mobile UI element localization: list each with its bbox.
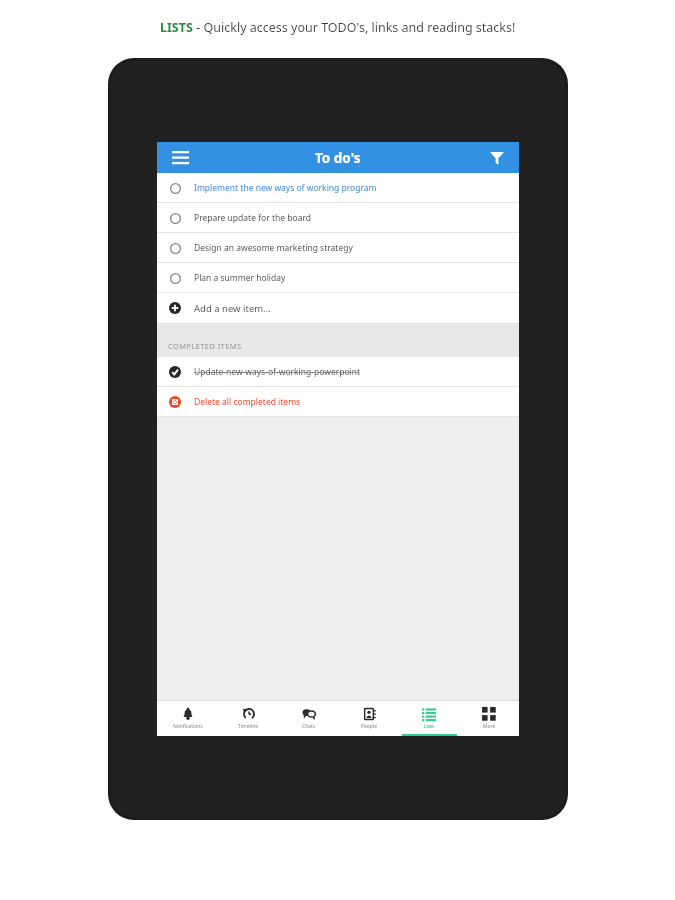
staticText: Lists — [424, 723, 435, 730]
button[interactable]: Implement the new ways of working progra… — [157, 173, 519, 203]
button[interactable]: Design an awesome marketing strategy — [157, 233, 519, 263]
button[interactable]: Update-new-ways-of-working-powerpoint — [157, 357, 519, 387]
staticText: Timeline — [238, 723, 259, 730]
button[interactable]: People — [339, 700, 399, 736]
button[interactable]: Plan a summer holiday — [157, 263, 519, 293]
staticText: Plan a summer holiday — [194, 272, 286, 284]
button[interactable]: Chats — [279, 700, 339, 736]
button[interactable]: Timeline — [218, 700, 279, 736]
staticText: More — [483, 723, 496, 730]
staticText: COMPLETED ITEMS — [168, 341, 242, 351]
staticText: To do's — [315, 149, 361, 167]
staticText: Prepare update for the board — [194, 212, 311, 224]
button[interactable]: Prepare update for the board — [157, 203, 519, 233]
staticText: Notifications — [173, 723, 203, 730]
button[interactable]: More — [459, 700, 519, 736]
button[interactable]: Filter — [483, 144, 511, 172]
staticText: People — [361, 723, 378, 730]
staticText: Design an awesome marketing strategy — [194, 242, 353, 254]
button[interactable]: Add a new item... — [157, 293, 519, 324]
button[interactable]: Lists — [399, 700, 459, 736]
staticText: Add a new item... — [194, 302, 271, 315]
button[interactable]: Delete all completed items — [157, 387, 519, 417]
staticText: Chats — [302, 723, 316, 730]
staticText: LISTS — [160, 19, 193, 36]
button[interactable]: Menu — [165, 143, 195, 173]
staticText: Implement the new ways of working progra… — [194, 182, 377, 194]
staticText: Update-new-ways-of-working-powerpoint — [194, 366, 361, 378]
staticText: - Quickly access your TODO's, links and … — [193, 19, 516, 36]
button[interactable]: Notifications — [157, 700, 218, 736]
staticText: Delete all completed items — [194, 396, 301, 408]
